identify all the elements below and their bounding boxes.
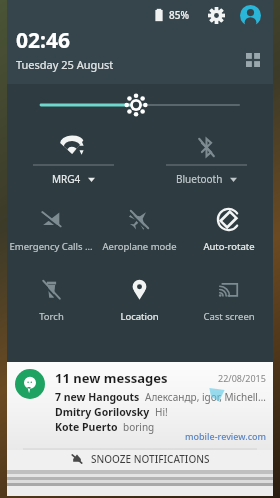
button[interactable]: Torch bbox=[7, 272, 95, 330]
staticText: 85% bbox=[169, 8, 189, 22]
staticText: boring bbox=[123, 420, 155, 434]
staticText: Aeroplane mode bbox=[102, 240, 177, 253]
button[interactable]: Settings bbox=[203, 2, 229, 28]
staticText: Torch bbox=[39, 310, 64, 323]
staticText: Location bbox=[120, 310, 159, 323]
staticText: Bluetooth bbox=[176, 172, 223, 186]
staticText: 02:46 bbox=[16, 26, 70, 55]
button[interactable]: Cast screen bbox=[184, 272, 273, 330]
button[interactable]: MRG4 bbox=[7, 132, 140, 194]
staticText: Auto-rotate bbox=[203, 240, 255, 253]
staticText: 7 new Hangouts bbox=[55, 390, 140, 404]
button[interactable]: 11 new messages bbox=[7, 362, 273, 450]
staticText: mobile-review.com bbox=[185, 430, 267, 442]
staticText: Dmitry Gorilovsky bbox=[55, 405, 150, 419]
staticText: MRG4 bbox=[52, 172, 81, 186]
button[interactable]: Location bbox=[95, 272, 184, 330]
button[interactable]: Bluetooth bbox=[140, 132, 273, 194]
staticText: Tuesday 25 August bbox=[16, 57, 114, 72]
staticText: 22/08/2015 bbox=[218, 372, 266, 384]
staticText: SNOOZE NOTIFICATIONS bbox=[91, 452, 210, 466]
staticText: Александр, igor, Michell… bbox=[145, 390, 266, 404]
staticText: Emergency Calls Only bbox=[7, 240, 95, 253]
staticText: Kote Puerto bbox=[55, 420, 118, 434]
button[interactable]: User profile bbox=[237, 2, 263, 28]
button[interactable]: Edit tiles bbox=[241, 48, 265, 72]
button[interactable]: Aeroplane mode bbox=[95, 202, 184, 260]
button[interactable]: SNOOZE NOTIFICATIONS bbox=[7, 450, 273, 470]
staticText: 11 new messages bbox=[55, 369, 168, 387]
button[interactable]: Emergency Calls Only bbox=[7, 202, 95, 260]
button[interactable]: Auto-rotate bbox=[184, 202, 273, 260]
staticText: Cast screen bbox=[203, 310, 255, 323]
button[interactable]: Brightness bbox=[7, 84, 273, 126]
staticText: Hi! bbox=[155, 405, 168, 419]
